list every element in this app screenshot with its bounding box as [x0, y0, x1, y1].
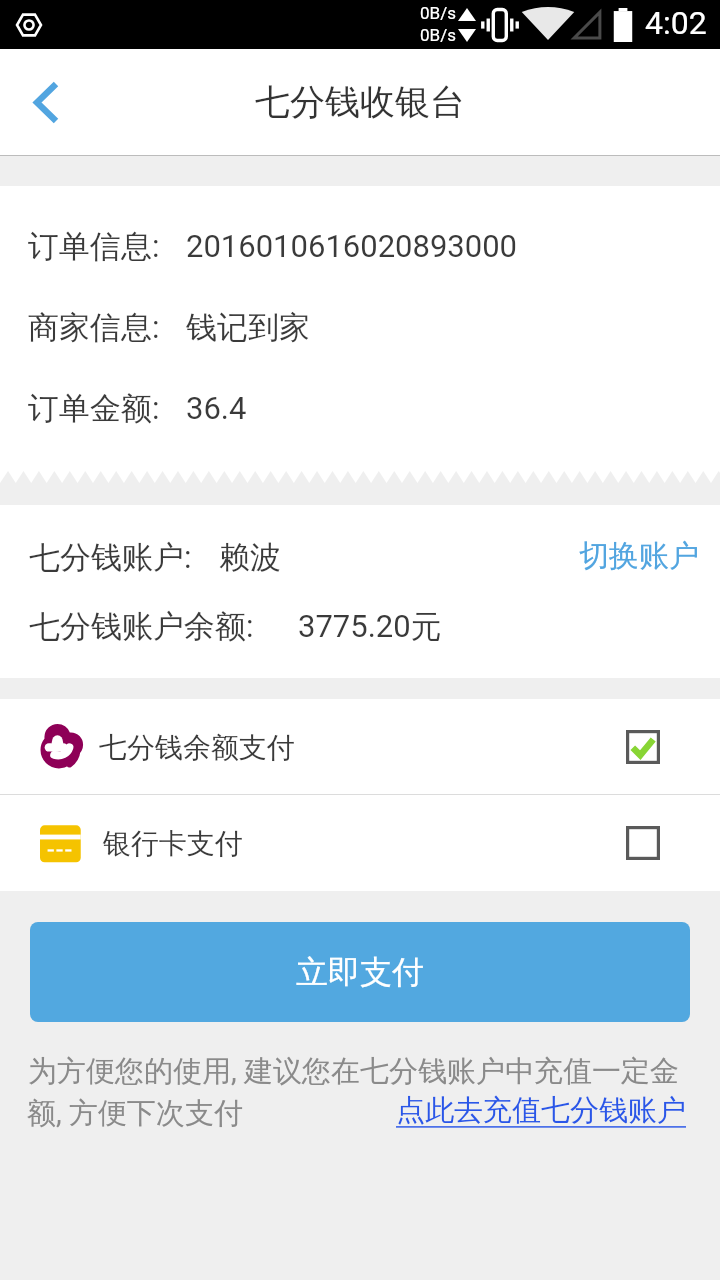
staticText: 额, 方便下次支付 — [27, 1095, 243, 1132]
button[interactable]: 七分钱余额支付 — [0, 699, 720, 795]
button[interactable]: 切换账户 — [558, 511, 720, 601]
staticText: 0B/s — [420, 3, 456, 23]
staticText: 切换账户 — [579, 537, 699, 575]
button[interactable]: 银行卡支付 — [0, 795, 720, 891]
staticText: 2016010616020893000 — [186, 228, 518, 264]
staticText: 立即支付 — [296, 952, 424, 992]
staticText: 为方便您的使用, 建议您在七分钱账户中充值一定金 — [28, 1053, 679, 1090]
button[interactable]: 点此去充值七分钱账户 — [396, 1092, 686, 1129]
button[interactable]: Back — [0, 49, 92, 155]
staticText: 订单信息: — [28, 227, 160, 266]
staticText: 七分钱账户余额: — [29, 607, 254, 646]
staticText: 七分钱余额支付 — [99, 730, 295, 765]
staticText: 商家信息: — [28, 308, 160, 347]
staticText: 银行卡支付 — [103, 826, 243, 861]
staticText: 赖波 — [219, 538, 281, 577]
staticText: 3775.20元 — [298, 607, 442, 646]
staticText: 4:02 — [645, 4, 707, 42]
staticText: 钱记到家 — [186, 308, 310, 347]
staticText: 订单金额: — [28, 389, 160, 428]
staticText: 点此去充值七分钱账户 — [396, 1092, 686, 1129]
staticText: 0B/s — [420, 25, 456, 45]
button[interactable]: 立即支付 — [30, 922, 690, 1022]
staticText: 36.4 — [186, 390, 247, 426]
staticText: 七分钱账户: — [29, 538, 192, 577]
staticText: 七分钱收银台 — [255, 80, 465, 124]
